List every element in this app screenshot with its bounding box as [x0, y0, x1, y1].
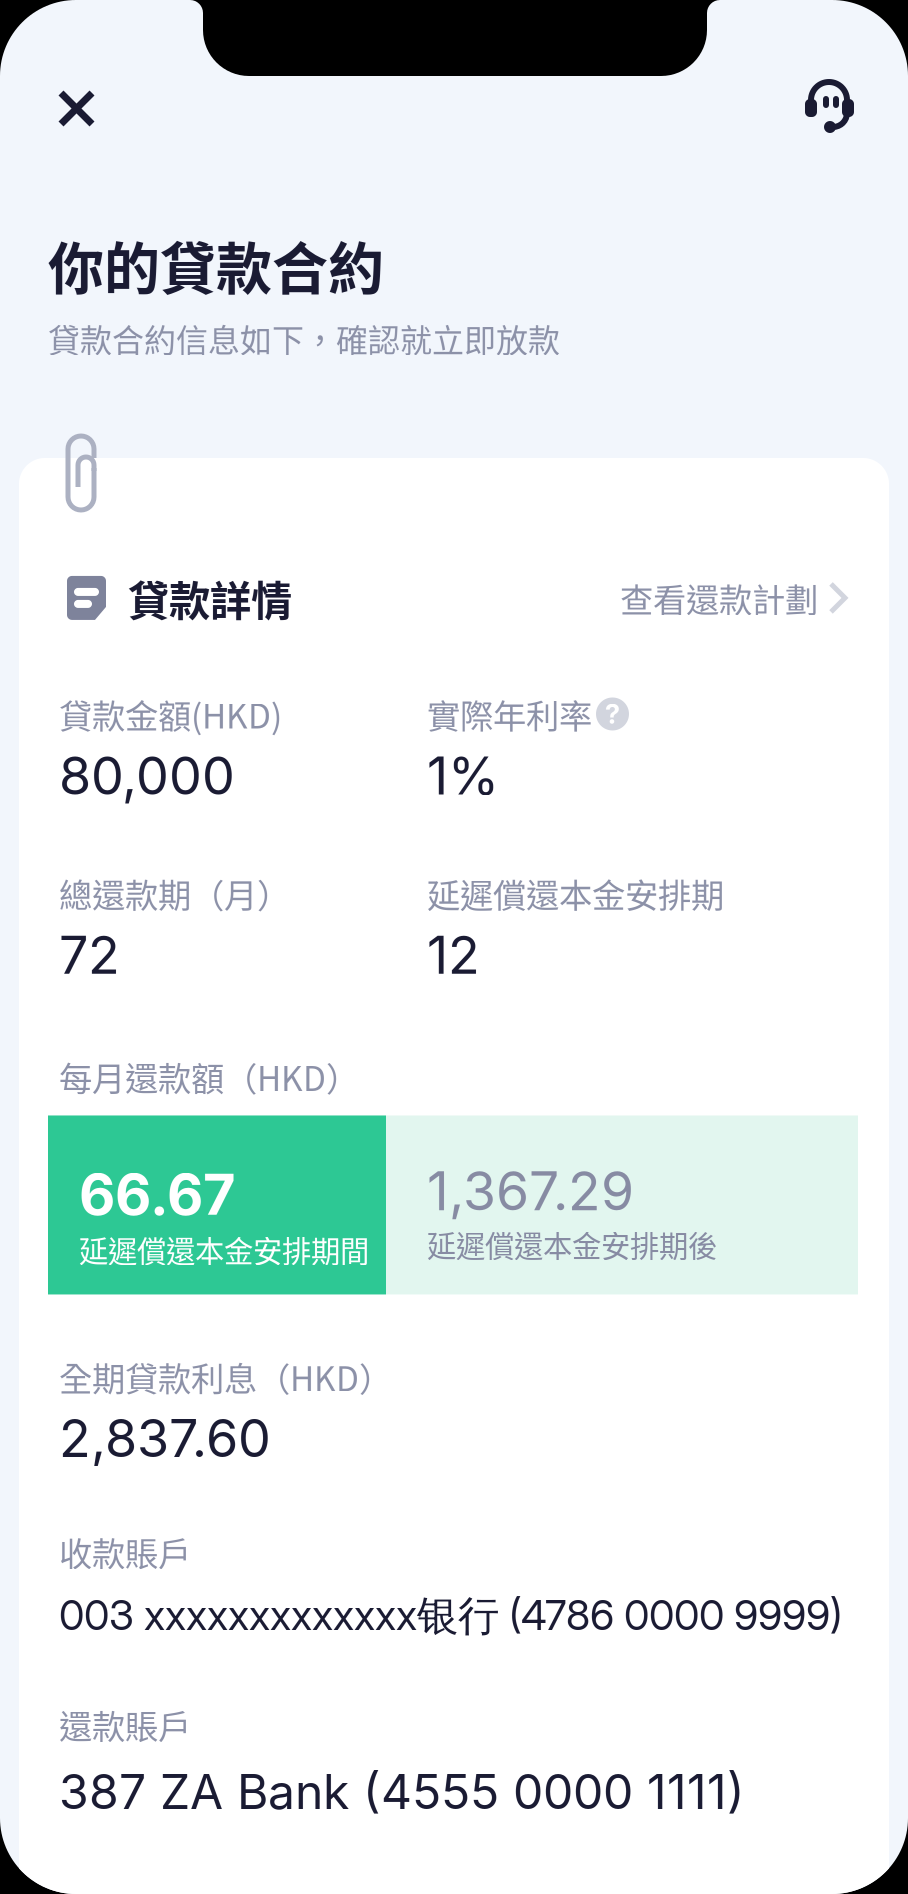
staticText: 貸款詳情	[128, 568, 292, 628]
staticText: 收款賬戶	[59, 1528, 191, 1576]
staticText: 查看還款計劃	[620, 574, 818, 622]
staticText: 12	[427, 923, 480, 986]
staticText: 387 ZA Bank (4555 0000 1111)	[59, 1762, 745, 1821]
staticText: 延遲償還本金安排期間	[79, 1228, 369, 1271]
staticText: 實際年利率	[427, 690, 592, 738]
staticText: ?	[605, 698, 620, 730]
staticText: 貸款合約信息如下，確認就立即放款	[48, 315, 560, 361]
staticText: 2,837.60	[59, 1407, 271, 1470]
staticText: 1%	[427, 744, 499, 807]
staticText: 你的貸款合約	[48, 224, 384, 305]
staticText: 總還款期（月）	[59, 869, 290, 917]
staticText: 延遲償還本金安排期	[427, 869, 724, 917]
staticText: 全期貸款利息（HKD）	[59, 1352, 392, 1401]
button[interactable]: 查看還款計劃	[620, 574, 848, 622]
button[interactable]: Close	[38, 72, 115, 145]
staticText: 72	[59, 923, 120, 986]
staticText: 80,000	[59, 744, 235, 807]
staticText: 每月還款額（HKD）	[59, 1052, 359, 1100]
staticText: 貸款金額(HKD)	[59, 690, 282, 738]
staticText: 還款賬戶	[59, 1700, 191, 1748]
staticText: 66.67	[79, 1160, 236, 1228]
staticText: 延遲償還本金安排期後	[427, 1223, 717, 1265]
staticText: 003 xxxxxxxxxxxxx银行 (4786 0000 9999)	[59, 1590, 842, 1642]
button[interactable]: Customer support	[786, 65, 873, 144]
staticText: 1,367.29	[427, 1158, 634, 1223]
